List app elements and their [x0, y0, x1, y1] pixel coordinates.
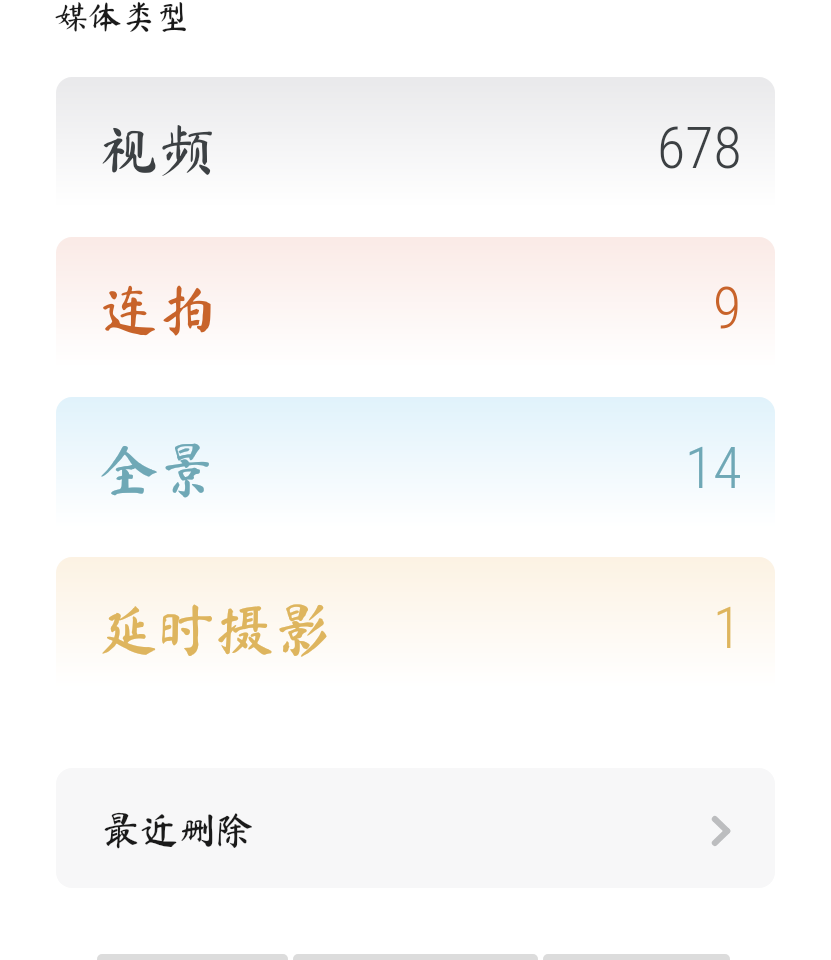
staticText: 最近删除: [102, 811, 255, 849]
button[interactable]: 最近删除: [56, 768, 775, 888]
other: Open recently deleted: [701, 811, 741, 851]
staticText: 9: [713, 274, 742, 342]
staticText: 678: [657, 114, 742, 182]
staticText: 延时摄影: [100, 600, 333, 658]
button[interactable]: 全景: [56, 397, 775, 551]
button[interactable]: 连拍: [56, 237, 775, 391]
staticText: 连拍: [100, 280, 217, 338]
staticText: 14: [685, 434, 742, 502]
staticText: 视频: [100, 120, 217, 178]
button[interactable]: 视频: [56, 77, 775, 231]
staticText: 1: [713, 594, 742, 662]
staticText: 全景: [100, 440, 217, 498]
button[interactable]: 延时摄影: [56, 557, 775, 711]
staticText: 媒体类型: [54, 0, 190, 33]
